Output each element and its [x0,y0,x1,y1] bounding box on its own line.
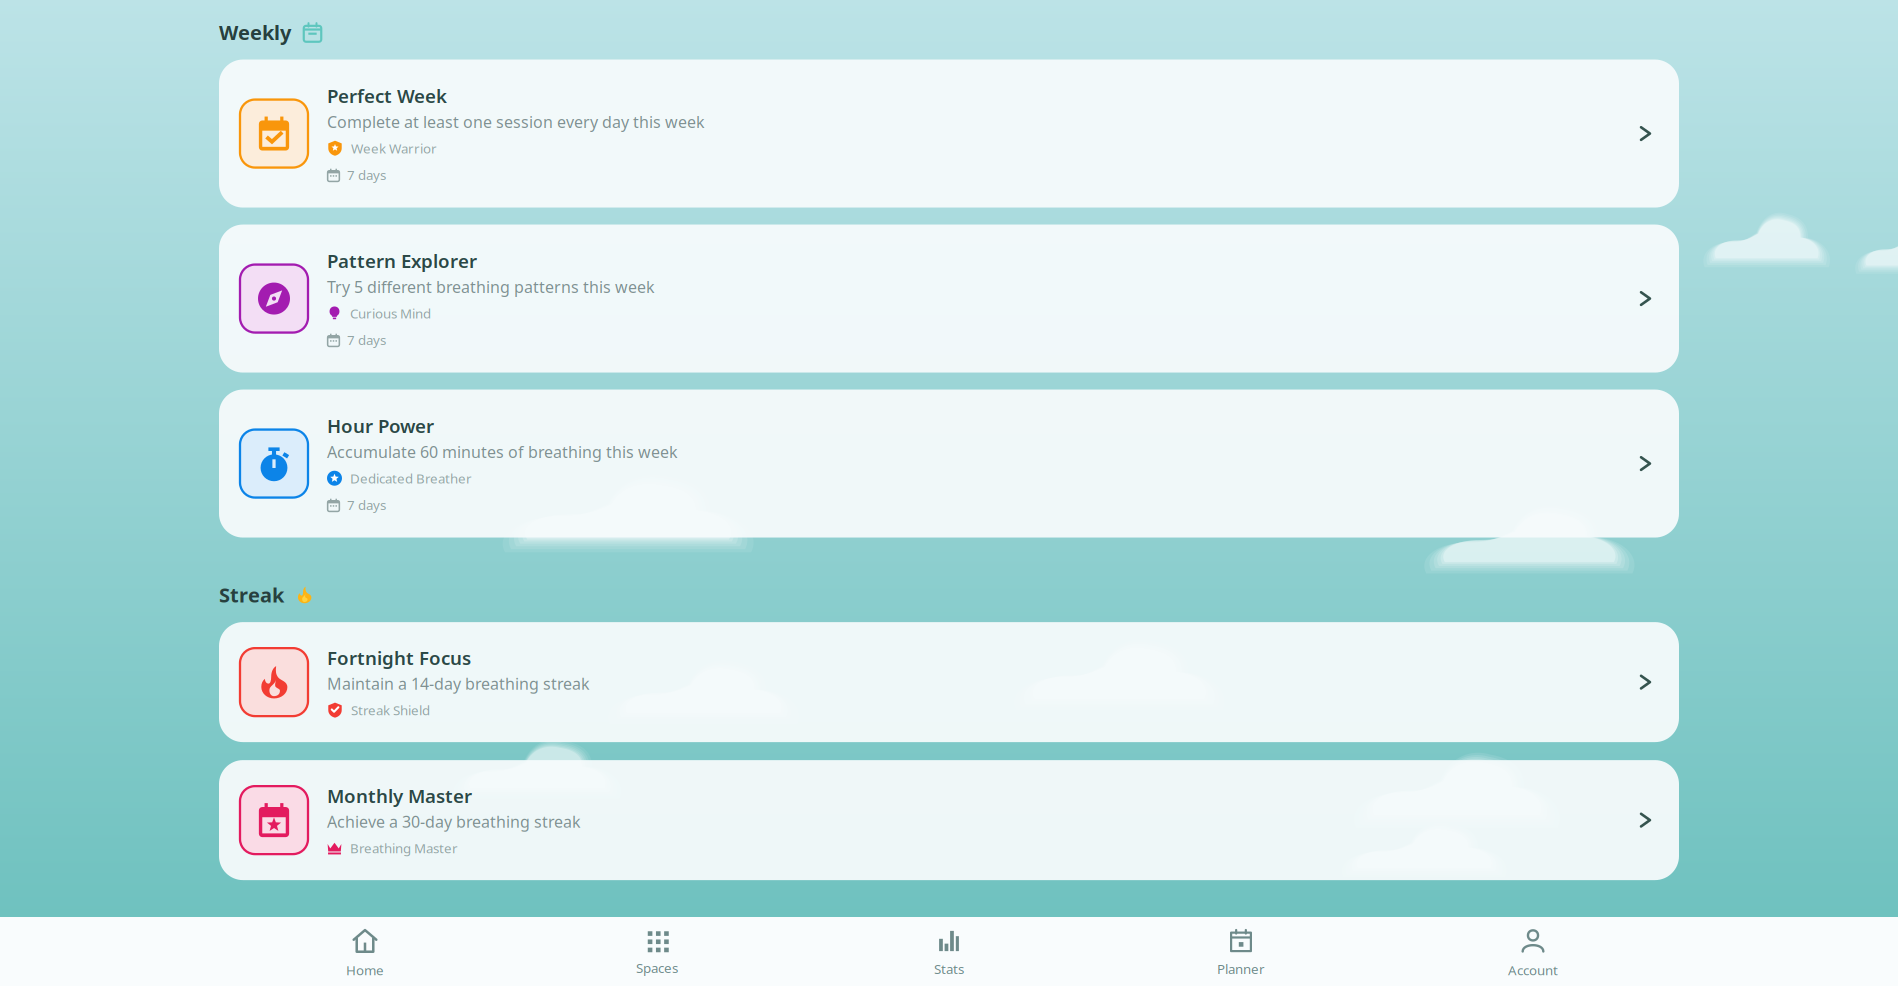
staticText: 7 days [347,331,386,349]
staticText: Fortnight Focus [327,645,471,670]
staticText: Stats [934,960,964,978]
staticText: Home [346,961,384,979]
button[interactable]: Planner [1095,917,1387,986]
button[interactable]: Hour Power [219,390,1679,538]
staticText: Hour Power [327,413,434,438]
staticText: Accumulate 60 minutes of breathing this … [327,441,678,462]
staticText: Curious Mind [350,304,431,322]
staticText: Weekly [219,19,291,46]
staticText: Maintain a 14-day breathing streak [327,673,590,694]
staticText: Week Warrior [351,139,437,157]
button[interactable]: Monthly Master [219,760,1679,880]
button[interactable]: Perfect Week [219,60,1679,208]
staticText: Account [1508,961,1558,979]
button[interactable]: Account [1387,917,1679,986]
staticText: Planner [1217,960,1265,978]
button[interactable]: Pattern Explorer [219,225,1679,373]
staticText: Streak Shield [351,701,430,719]
staticText: Dedicated Breather [350,469,472,487]
staticText: Achieve a 30-day breathing streak [327,811,581,832]
button[interactable]: Fortnight Focus [219,622,1679,742]
staticText: Pattern Explorer [327,248,477,273]
staticText: Monthly Master [327,783,472,808]
staticText: Streak [219,582,284,608]
staticText: 7 days [347,166,386,184]
button[interactable]: Spaces [511,917,803,986]
staticText: 7 days [347,496,386,514]
button[interactable]: Home [219,917,511,986]
staticText: Try 5 different breathing patterns this … [327,276,655,297]
staticText: Breathing Master [350,839,458,857]
staticText: Complete at least one session every day … [327,111,705,132]
staticText: Spaces [636,959,678,977]
button[interactable]: Stats [803,917,1095,986]
staticText: Perfect Week [327,83,447,108]
